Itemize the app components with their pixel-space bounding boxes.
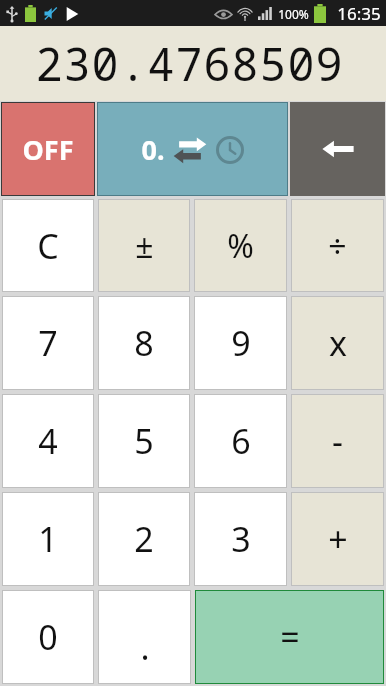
staticText: 8 [134,320,154,366]
button[interactable]: 9 [194,296,287,390]
button[interactable]: + [291,492,384,586]
staticText: 100% [278,6,309,22]
button[interactable]: Memory [97,102,288,196]
staticText: 16:35 [337,2,381,25]
staticText: x [329,320,347,366]
staticText: = [280,614,300,660]
staticText: 230.4768509 [35,33,344,94]
staticText: 3 [231,516,251,562]
staticText: ÷ [328,224,347,268]
button[interactable]: = [195,590,384,684]
button[interactable]: ± [98,199,190,292]
staticText: 4 [38,418,58,464]
button[interactable]: OFF [1,102,95,196]
button[interactable]: 2 [98,492,190,586]
button[interactable]: Backspace [290,102,385,196]
staticText: 6 [231,418,251,464]
button[interactable]: 3 [194,492,287,586]
staticText: ± [135,224,154,268]
button[interactable]: 4 [2,394,94,488]
button[interactable]: - [291,394,384,488]
button[interactable]: . [98,590,191,684]
button[interactable]: 0 [2,590,94,684]
staticText: - [332,418,343,464]
staticText: 7 [38,320,58,366]
button[interactable]: 6 [194,394,287,488]
staticText: 9 [231,320,251,366]
staticText: 0 [38,614,58,660]
button[interactable]: 5 [98,394,190,488]
staticText: 0. [141,131,165,168]
button[interactable]: 7 [2,296,94,390]
button[interactable]: C [2,199,94,292]
staticText: 1 [38,516,58,562]
button[interactable]: 1 [2,492,94,586]
button[interactable]: 8 [98,296,190,390]
staticText: . [140,624,150,670]
button[interactable]: x [291,296,384,390]
staticText: + [328,516,348,562]
button[interactable]: ÷ [291,199,384,292]
staticText: 5 [134,418,154,464]
staticText: % [227,224,254,268]
staticText: C [37,223,59,269]
staticText: OFF [22,131,74,168]
staticText: 2 [134,516,154,562]
button[interactable]: % [194,199,287,292]
